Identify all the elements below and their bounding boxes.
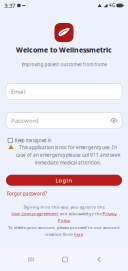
button[interactable]: Recent apps — [14, 252, 48, 267]
staticText: and acknowledge the — [58, 211, 102, 216]
staticText: 4G — [109, 2, 115, 9]
staticText: Welcome to Wellnessmetric — [16, 45, 112, 54]
staticText: Password — [11, 116, 39, 124]
staticText: 3:37 — [4, 1, 15, 9]
button[interactable]: User License agreement — [11, 211, 58, 216]
staticText: creation form — [45, 231, 74, 237]
button[interactable]: Policy — [58, 217, 70, 223]
button[interactable]: Back — [82, 252, 116, 267]
staticText: Privacy — [102, 211, 116, 216]
staticText: This application is not for emergency us… — [16, 144, 120, 166]
button[interactable]: Keep me signed in — [8, 137, 52, 143]
staticText: here — [74, 231, 83, 237]
staticText: Improving patient outcomes from home — [21, 61, 106, 67]
staticText: Login — [55, 176, 72, 184]
staticText: User License agreement — [11, 211, 58, 216]
staticText: To delete your account, please proceed t… — [8, 224, 120, 230]
button[interactable]: Forgot password? — [7, 191, 47, 197]
staticText: Policy — [58, 217, 70, 223]
button[interactable]: here — [74, 231, 83, 237]
button[interactable]: Privacy — [102, 211, 116, 216]
staticText: Email — [11, 87, 26, 95]
staticText: Signing in to this app, you agree to the — [23, 204, 104, 210]
button[interactable]: Home — [48, 252, 82, 267]
staticText: Keep me signed in — [15, 137, 52, 143]
button[interactable]: Login — [6, 175, 122, 186]
staticText: Forgot password? — [7, 191, 47, 197]
